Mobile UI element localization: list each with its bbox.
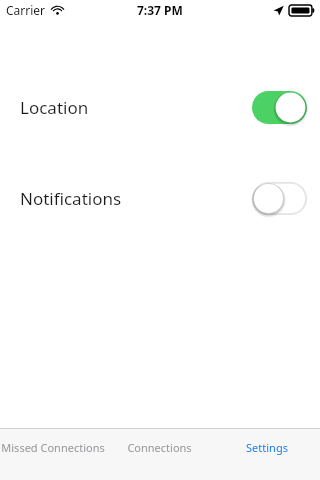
staticText: Location — [20, 96, 89, 119]
staticText: Connections — [127, 440, 192, 455]
staticText: Carrier — [6, 2, 46, 18]
button[interactable]: Off — [252, 182, 307, 215]
staticText: 7:37 PM — [137, 2, 183, 18]
button[interactable]: Missed Connections — [0, 429, 106, 480]
button[interactable]: Notifications — [0, 180, 320, 216]
button[interactable]: On — [252, 91, 307, 124]
button[interactable]: Settings — [213, 429, 320, 480]
staticText: Notifications — [20, 187, 122, 210]
button[interactable]: Location — [0, 89, 320, 125]
staticText: Settings — [246, 440, 288, 455]
button[interactable]: Connections — [106, 429, 213, 480]
staticText: Missed Connections — [1, 440, 105, 455]
